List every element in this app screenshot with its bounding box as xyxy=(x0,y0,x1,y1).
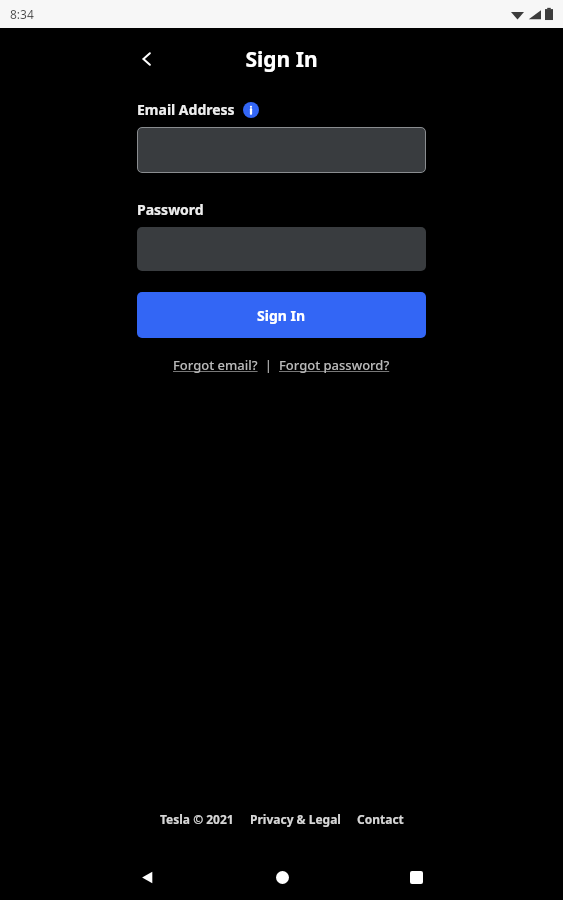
button[interactable]: Email address field xyxy=(137,127,426,173)
button[interactable]: Home xyxy=(265,860,299,894)
button[interactable]: Email address info xyxy=(242,101,260,119)
button[interactable]: Forgot email? xyxy=(173,356,258,374)
staticText: Sign In xyxy=(245,45,318,74)
staticText: Tesla © 2021 xyxy=(160,811,234,827)
staticText: Forgot email? xyxy=(173,356,258,374)
button[interactable]: Contact xyxy=(357,811,404,827)
staticText: | xyxy=(258,356,279,374)
staticText: 8:34 xyxy=(10,6,34,22)
button[interactable]: Back xyxy=(130,42,164,76)
button[interactable]: Privacy & Legal xyxy=(250,811,341,827)
staticText: Forgot password? xyxy=(279,356,390,374)
button[interactable]: Sign In xyxy=(137,292,426,338)
button[interactable]: Back xyxy=(130,860,164,894)
staticText: Privacy & Legal xyxy=(250,811,341,827)
button[interactable]: Forgot password? xyxy=(279,356,390,374)
staticText: Contact xyxy=(357,811,404,827)
staticText: Sign In xyxy=(257,306,306,325)
staticText: Email Address xyxy=(137,100,235,119)
button[interactable]: Recent apps xyxy=(399,860,433,894)
staticText: Password xyxy=(137,200,204,219)
